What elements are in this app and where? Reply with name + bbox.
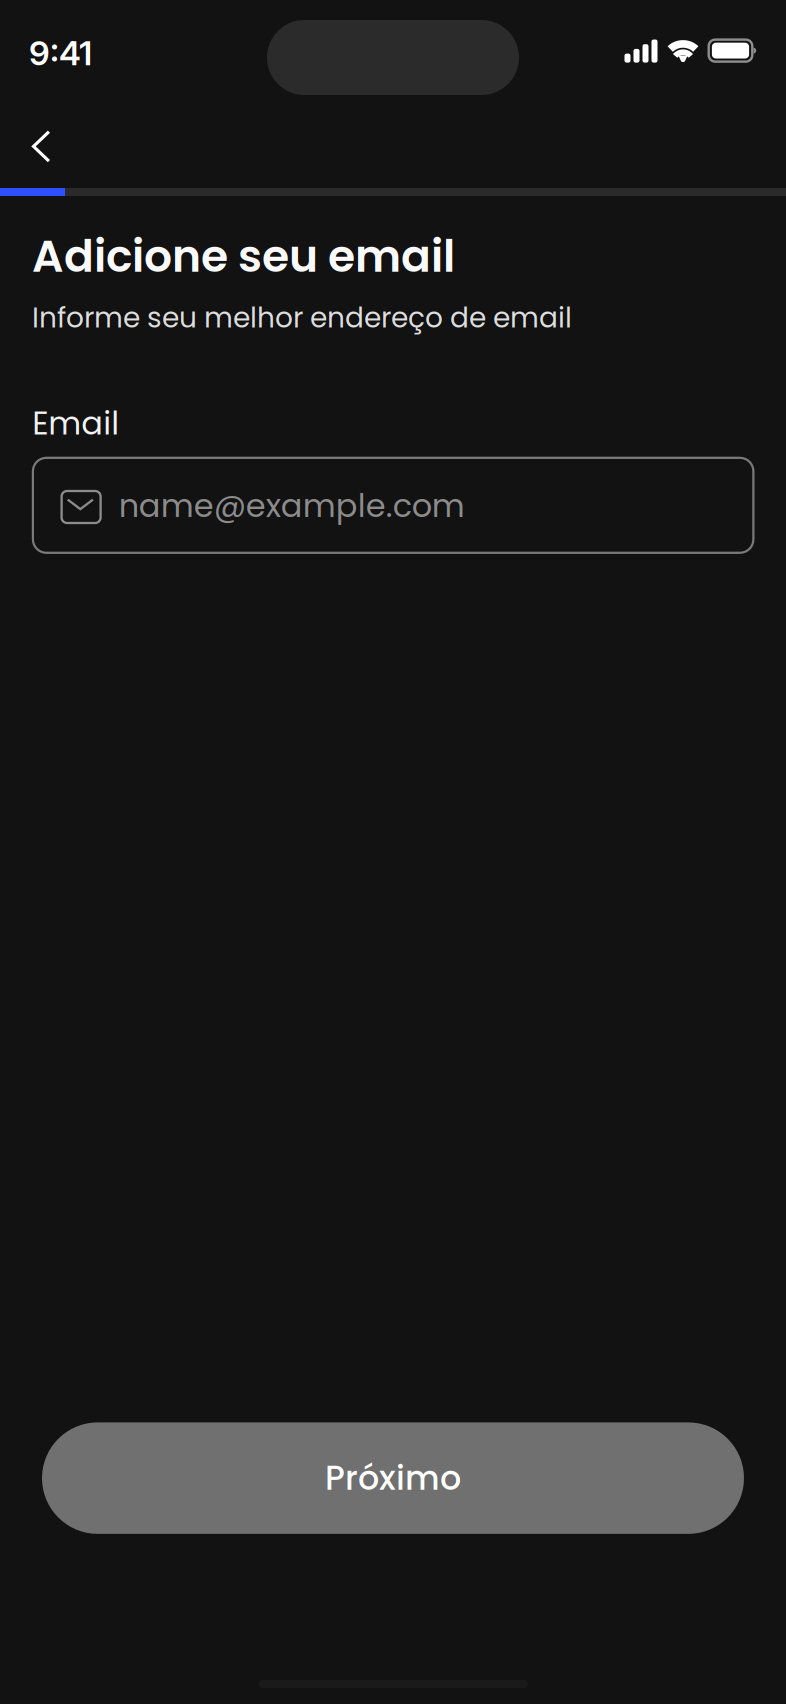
staticText: 9:41 — [29, 33, 92, 73]
staticText: name@example.com — [119, 483, 465, 528]
button[interactable]: Próximo — [42, 1422, 744, 1534]
button[interactable]: Back — [10, 115, 72, 177]
staticText: Adicione seu email — [32, 225, 455, 287]
staticText: Próximo — [325, 1455, 461, 1501]
staticText: Email — [32, 401, 119, 446]
staticText: Informe seu melhor endereço de email — [32, 298, 572, 337]
